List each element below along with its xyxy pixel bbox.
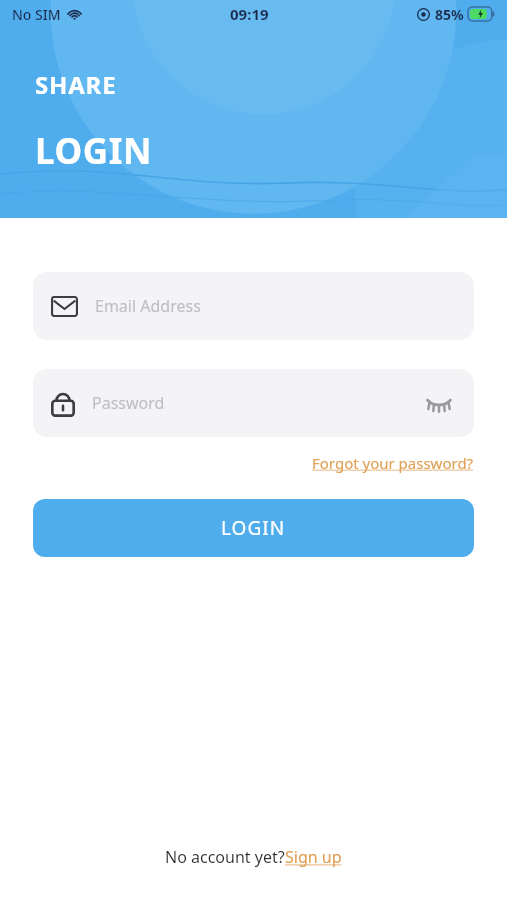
button[interactable]: Show password (422, 391, 456, 415)
button[interactable]: Forgot your password? (310, 449, 476, 477)
staticText: 09:19 (230, 4, 269, 24)
button[interactable]: LOGIN (33, 499, 474, 557)
button[interactable]: Email Address (33, 272, 474, 340)
staticText: Email Address (95, 295, 201, 317)
staticText: 85% (435, 5, 464, 24)
staticText: LOGIN (221, 515, 286, 541)
button[interactable]: Password (33, 369, 474, 437)
staticText: No SIM (12, 5, 61, 24)
staticText: Forgot your password? (312, 453, 474, 473)
button[interactable]: Sign up (285, 846, 342, 868)
staticText: LOGIN (35, 127, 152, 175)
staticText: Password (92, 392, 165, 414)
staticText: No account yet? (165, 846, 285, 868)
staticText: SHARE (35, 68, 117, 101)
staticText: Sign up (285, 846, 342, 868)
